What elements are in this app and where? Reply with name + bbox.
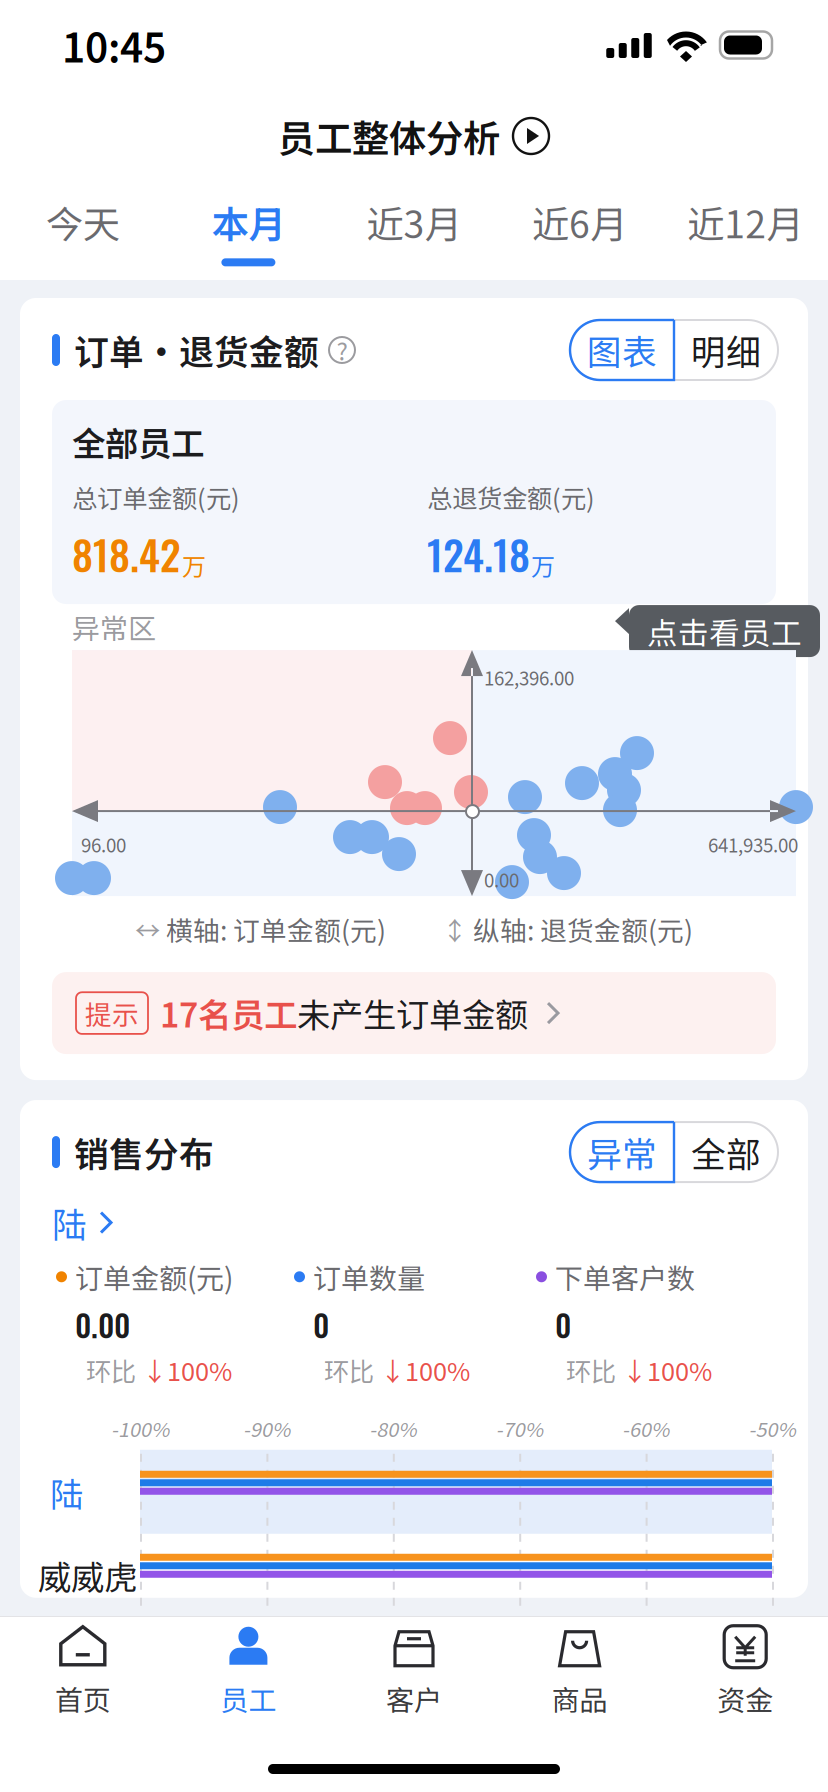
staticText: -90% xyxy=(243,1414,290,1443)
staticText: 总订单金额(元) xyxy=(72,479,240,515)
staticText: 订单金额(元) xyxy=(75,1257,233,1296)
staticText: 全部员工 xyxy=(72,418,204,465)
staticText: 陆 xyxy=(52,1198,87,1247)
staticText: 订单数量 xyxy=(313,1257,425,1296)
staticText: 员工整体分析 xyxy=(278,110,500,162)
staticText: 点击看员工 xyxy=(647,609,802,653)
button[interactable]: 异常 xyxy=(570,1122,674,1182)
staticText: 订单·退货金额 xyxy=(74,325,319,374)
staticText: 641,935.00 xyxy=(708,831,798,857)
staticText: 销售分布 xyxy=(74,1128,214,1176)
staticText: 10:45 xyxy=(62,17,166,73)
staticText: 异常 xyxy=(587,1128,657,1176)
button[interactable]: 近12月 xyxy=(662,182,828,280)
staticText: 环比 xyxy=(86,1352,142,1388)
button[interactable]: 今天 xyxy=(0,182,166,280)
staticText: 总退货金额(元) xyxy=(427,479,595,515)
staticText: 0.00 xyxy=(484,866,519,892)
button[interactable]: 近3月 xyxy=(331,182,497,280)
staticText: ↔ xyxy=(135,911,160,947)
staticText: 今天 xyxy=(46,196,120,248)
button[interactable]: 明细 xyxy=(674,320,778,380)
staticText: 环比 xyxy=(566,1352,622,1388)
staticText: 未产生订单金额 xyxy=(297,990,528,1037)
staticText: 威威虎 xyxy=(38,1552,137,1599)
staticText: -50% xyxy=(748,1414,795,1443)
staticText: 162,396.00 xyxy=(484,664,574,690)
staticText: 近3月 xyxy=(366,196,461,248)
button[interactable]: 客户 xyxy=(331,1617,497,1725)
staticText: 下单客户数 xyxy=(555,1257,695,1296)
button[interactable]: 近6月 xyxy=(497,182,662,280)
staticText: 全部 xyxy=(691,1128,761,1176)
staticText: 陆 xyxy=(50,1469,83,1516)
staticText: -80% xyxy=(369,1414,416,1443)
staticText: 万 xyxy=(182,548,206,582)
staticText: 图表 xyxy=(587,325,657,374)
staticText: 17名员工 xyxy=(160,990,297,1037)
staticText: 0 xyxy=(313,1302,329,1347)
button[interactable]: 资金 xyxy=(662,1617,828,1725)
staticText: 明细 xyxy=(691,325,761,374)
staticText: 0 xyxy=(555,1302,571,1347)
staticText: 818.42 xyxy=(72,523,181,584)
staticText: 124.18 xyxy=(427,523,530,584)
staticText: 96.00 xyxy=(81,831,126,857)
button[interactable]: 陆 xyxy=(20,1182,808,1247)
staticText: ↕ xyxy=(442,911,467,947)
staticText: 环比 xyxy=(324,1352,380,1388)
button[interactable]: 首页 xyxy=(0,1617,166,1725)
staticText: 异常区 xyxy=(72,607,156,647)
staticText: 纵轴: 退货金额(元) xyxy=(467,910,693,948)
staticText: 近12月 xyxy=(687,196,803,248)
staticText: 近6月 xyxy=(532,196,627,248)
staticText: 资金 xyxy=(717,1679,773,1718)
staticText: 员工 xyxy=(220,1679,276,1718)
button[interactable]: 员工 xyxy=(166,1617,331,1725)
button[interactable]: 本月 xyxy=(166,182,331,280)
staticText: ? xyxy=(336,333,347,367)
button[interactable]: 商品 xyxy=(497,1617,662,1725)
staticText: 首页 xyxy=(55,1679,111,1718)
button[interactable]: 全部 xyxy=(674,1122,778,1182)
staticText: 0.00 xyxy=(75,1302,130,1347)
staticText: ↓100% xyxy=(142,1352,232,1388)
staticText: -100% xyxy=(111,1414,169,1443)
staticText: 万 xyxy=(531,548,555,582)
staticText: -60% xyxy=(622,1414,669,1443)
staticText: 本月 xyxy=(211,196,285,248)
staticText: 横轴: 订单金额(元) xyxy=(160,910,386,948)
button[interactable]: 播放演示 xyxy=(500,117,550,155)
button[interactable]: 提示 xyxy=(52,972,776,1054)
staticText: 商品 xyxy=(552,1679,608,1718)
staticText: ↓100% xyxy=(380,1352,470,1388)
button[interactable]: 图表 xyxy=(570,320,674,380)
staticText: -70% xyxy=(496,1414,543,1443)
staticText: 客户 xyxy=(386,1679,442,1718)
staticText: 提示 xyxy=(85,994,139,1032)
staticText: ↓100% xyxy=(622,1352,712,1388)
